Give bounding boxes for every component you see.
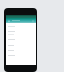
button[interactable] bbox=[6, 30, 36, 35]
button[interactable]: Navigate up bbox=[6, 15, 36, 23]
button[interactable]: Search bbox=[31, 19, 35, 23]
button[interactable] bbox=[6, 45, 36, 50]
button[interactable] bbox=[6, 25, 36, 30]
button[interactable] bbox=[6, 50, 36, 55]
button[interactable] bbox=[6, 34, 36, 40]
button[interactable]: Navigate up bbox=[7, 19, 11, 23]
